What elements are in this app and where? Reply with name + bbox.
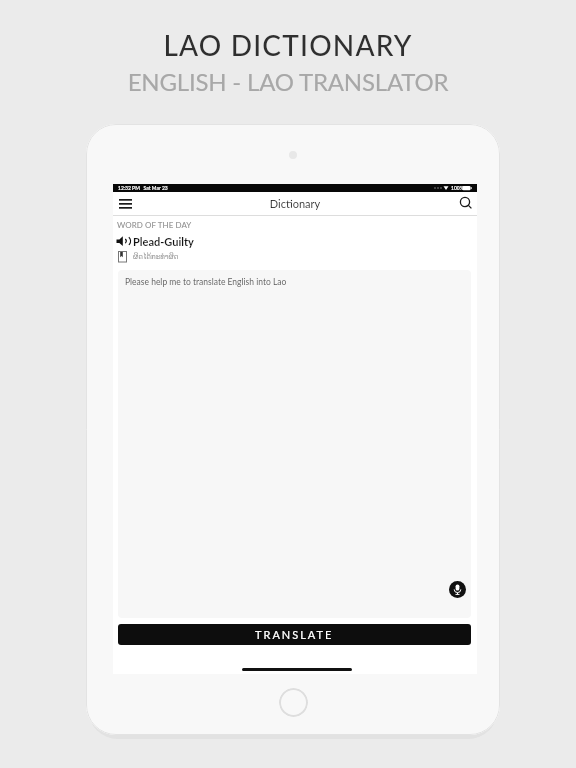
staticText: WORD OF THE DAY xyxy=(117,220,192,230)
button[interactable]: Plead-Guilty xyxy=(116,235,316,249)
staticText: Please help me to translate English into… xyxy=(125,277,287,287)
button[interactable] xyxy=(458,195,475,212)
button[interactable] xyxy=(449,581,466,598)
staticText: 100% xyxy=(451,185,464,191)
staticText: Dictionary xyxy=(113,197,477,210)
staticText: LAO DICTIONARY xyxy=(0,28,576,62)
staticText: ຜິດໄດ້ກະທຳຜິດ xyxy=(133,253,179,261)
staticText: ENGLISH - LAO TRANSLATOR xyxy=(0,67,576,96)
button[interactable]: TRANSLATE xyxy=(118,624,471,645)
button[interactable]: Please help me to translate English into… xyxy=(118,270,471,618)
staticText: Plead-Guilty xyxy=(133,235,194,248)
staticText: 12:32 PM Sat Mar 23 xyxy=(118,185,168,191)
staticText: TRANSLATE xyxy=(255,628,334,641)
button[interactable] xyxy=(115,194,135,213)
button[interactable] xyxy=(279,688,308,717)
button[interactable]: ຜິດໄດ້ກະທຳຜິດ xyxy=(116,250,316,264)
